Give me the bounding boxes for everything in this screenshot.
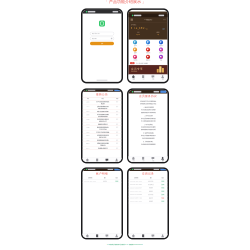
button[interactable]: 11-08: [82, 126, 121, 131]
button[interactable]: 12-22: [82, 105, 121, 110]
staticText: 积分: [137, 31, 139, 33]
staticText: 已退款: [161, 197, 164, 199]
button[interactable]: 11-19: [82, 123, 121, 126]
button[interactable]: 消息: [102, 158, 112, 164]
staticText: 请输入密码: [91, 38, 96, 39]
staticText: 新绑定的支付方式: [98, 120, 106, 122]
staticText: 客服服务时间调整公告: [97, 123, 107, 125]
button[interactable]: 优惠券: [148, 31, 167, 36]
button[interactable]: 11-28: [82, 118, 121, 123]
staticText: 已于本月正式生效: [98, 128, 106, 130]
staticText: 积分兑换礼品: [147, 184, 153, 185]
button[interactable]: 扫一扫: [141, 40, 154, 47]
button[interactable]: 优惠券: [128, 47, 141, 54]
button[interactable]: 首页: [128, 234, 138, 239]
button[interactable]: 09-24: [82, 142, 121, 147]
staticText: 会员充值: [102, 180, 106, 182]
staticText: 新增门店自提服务 支持预约: [96, 111, 108, 112]
staticText: 2024-01-05 18:02: [130, 184, 142, 185]
button[interactable]: 首页: [82, 234, 92, 239]
staticText: 明细 >: [162, 28, 165, 30]
staticText: 12-15: [85, 111, 89, 112]
button[interactable]: 客服中心: [141, 54, 154, 61]
staticText: 商城消费: [148, 187, 152, 189]
button[interactable]: 订单: [138, 234, 148, 239]
staticText: 我的订单: [146, 52, 150, 54]
staticText: 支付渠道变更提示 请及时更: [96, 119, 108, 120]
staticText: XX商城 · 会员中心: [144, 19, 152, 21]
staticText: 用户应当妥善保管账号及密码信息: [140, 118, 155, 119]
button[interactable]: 会员卡: [128, 40, 141, 47]
button[interactable]: 12-28: [82, 100, 121, 105]
staticText: 二、账号与安全保障: [143, 115, 152, 117]
staticText: 10-30: [85, 131, 89, 133]
staticText: 交易记录: [142, 172, 154, 175]
button[interactable]: 积分商城: [154, 47, 167, 54]
button[interactable]: 登 录: [90, 42, 114, 45]
staticText: 消息: [152, 160, 154, 162]
button[interactable]: 首页: [128, 156, 138, 162]
button[interactable]: 我的: [112, 158, 122, 164]
button[interactable]: 消息: [148, 75, 158, 80]
staticText: 秋季焕新专场 指定品类满额: [96, 143, 108, 144]
staticText: 客服中心: [146, 59, 150, 61]
staticText: 09-24: [85, 142, 89, 144]
button[interactable]: 10-30: [82, 131, 121, 134]
staticText: 2024-01-08 10:24: [84, 180, 96, 182]
button[interactable]: 更多: [154, 54, 167, 61]
staticText: 12-22: [85, 106, 89, 108]
staticText: 已完成: [161, 180, 164, 182]
button[interactable]: 订单: [92, 234, 102, 239]
button[interactable]: 订单: [138, 75, 148, 80]
button[interactable]: 消息: [148, 156, 158, 162]
button[interactable]: 10-06: [82, 139, 121, 142]
staticText: 关于部分订单发货延迟的致歉: [96, 131, 109, 133]
button[interactable]: 我的: [158, 234, 168, 239]
staticText: 更多: [160, 59, 162, 61]
button[interactable]: 我的: [112, 234, 122, 239]
button[interactable]: 我的: [158, 75, 168, 80]
staticText: 扫一扫: [146, 45, 149, 46]
staticText: 优惠券的发放以及订单查询等功能: [140, 112, 155, 113]
staticText: 「 产品功能介绍展示 」: [104, 0, 146, 4]
button[interactable]: 积分: [128, 31, 148, 36]
staticText: 五、协议的变更与终止: [143, 141, 153, 142]
button[interactable]: 10-18: [82, 134, 121, 139]
button[interactable]: 充值中心: [154, 40, 167, 47]
button[interactable]: 消息: [148, 234, 158, 239]
staticText: 尊享五重特权: [131, 71, 137, 72]
button[interactable]: More: [161, 17, 167, 22]
staticText: 会员卡充值: [148, 180, 153, 182]
staticText: 三、积分与会员权益: [143, 124, 152, 125]
button[interactable]: 订单: [92, 158, 102, 164]
button[interactable]: Menu: [128, 17, 135, 22]
staticText: 我的: [162, 160, 164, 162]
button[interactable]: 12-15: [82, 110, 121, 113]
button[interactable]: 我的: [158, 156, 168, 162]
staticText: 本协议由用户与平台共同签署并确认: [140, 100, 156, 102]
staticText: 首页: [132, 160, 134, 162]
staticText: 使用本服务之前请仔细阅读以下条款: [140, 103, 156, 105]
button[interactable]: 12-06: [82, 113, 121, 118]
button[interactable]: 首页: [128, 75, 138, 80]
button[interactable]: 我的订单: [141, 47, 154, 54]
staticText: 2023-12-15 20:08: [130, 194, 142, 195]
button[interactable]: 首页: [82, 158, 92, 164]
staticText: 账户明细: [96, 172, 108, 175]
staticText: 订单: [142, 78, 144, 80]
button[interactable]: 消息: [102, 234, 112, 239]
button[interactable]: 09-12: [82, 147, 121, 150]
staticText: 官方: [116, 101, 118, 103]
button[interactable]: 订单: [138, 156, 148, 162]
button[interactable]: 门店导航: [128, 54, 141, 61]
